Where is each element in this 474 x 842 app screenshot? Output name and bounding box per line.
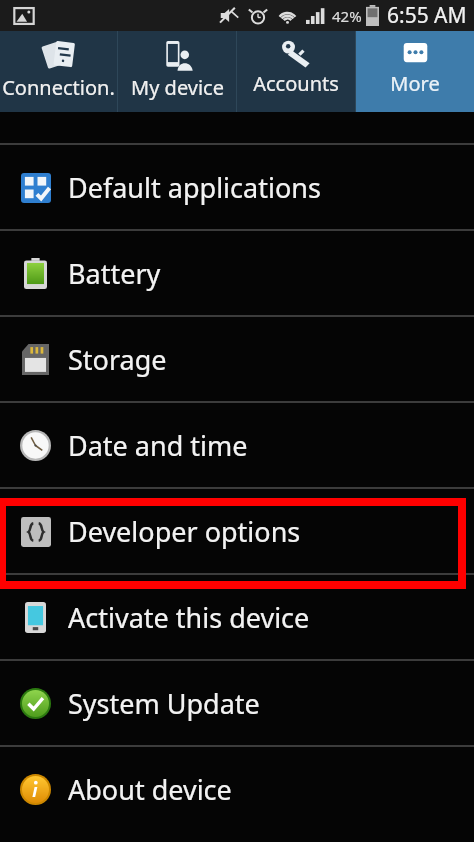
button[interactable]: My device bbox=[118, 31, 236, 112]
button[interactable]: Date and time bbox=[0, 403, 474, 487]
staticText: Developer options bbox=[68, 513, 301, 550]
staticText: 6:55 AM bbox=[387, 1, 467, 30]
button[interactable]: Connection.. bbox=[0, 31, 117, 112]
button[interactable]: Battery bbox=[0, 231, 474, 315]
button[interactable]: More bbox=[356, 31, 474, 112]
staticText: Default applications bbox=[68, 169, 321, 206]
other: Highlight around Developer options bbox=[2, 502, 462, 585]
staticText: Battery bbox=[68, 255, 161, 292]
staticText: Activate this device bbox=[68, 599, 310, 636]
button[interactable]: Activate this device bbox=[0, 575, 474, 659]
button[interactable]: Default applications bbox=[0, 145, 474, 229]
staticText: Connection.. bbox=[0, 74, 117, 101]
button[interactable]: About device bbox=[0, 747, 474, 831]
staticText: More bbox=[390, 70, 440, 97]
staticText: Date and time bbox=[68, 427, 248, 464]
button[interactable]: System Update bbox=[0, 661, 474, 745]
staticText: Storage bbox=[68, 341, 167, 378]
staticText: My device bbox=[131, 74, 224, 101]
button[interactable]: Storage bbox=[0, 317, 474, 401]
staticText: System Update bbox=[68, 685, 260, 722]
staticText: 42% bbox=[332, 6, 362, 26]
button[interactable]: Developer options bbox=[0, 489, 474, 573]
button[interactable]: Accounts bbox=[237, 31, 355, 112]
staticText: Accounts bbox=[253, 70, 339, 97]
staticText: About device bbox=[68, 771, 232, 808]
